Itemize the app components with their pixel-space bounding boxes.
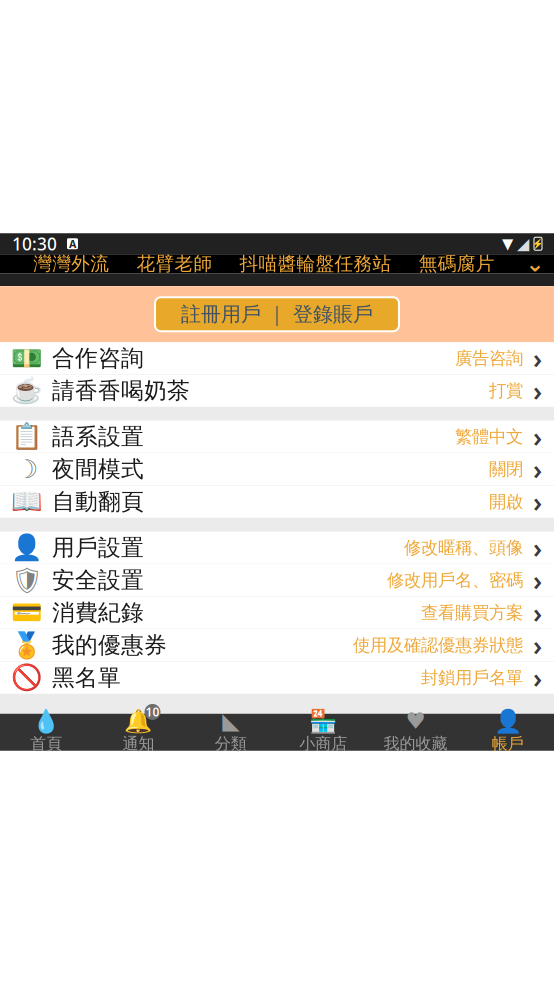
- button[interactable]: 🏪: [277, 706, 369, 759]
- staticText: 📖: [11, 487, 43, 516]
- staticText: ◢: [517, 235, 529, 253]
- button[interactable]: 💵: [0, 342, 554, 374]
- button[interactable]: 🚫: [0, 662, 554, 694]
- staticText: 自動翻頁: [52, 488, 144, 516]
- staticText: ›: [533, 451, 542, 487]
- staticText: 👤: [494, 708, 522, 734]
- staticText: 💳: [11, 598, 43, 627]
- staticText: ›: [533, 419, 542, 454]
- staticText: 請香香喝奶茶: [52, 377, 190, 405]
- button[interactable]: 📋: [0, 421, 554, 453]
- staticText: 消費紀錄: [52, 599, 144, 627]
- button[interactable]: 👤: [462, 706, 554, 759]
- staticText: ›: [533, 484, 542, 519]
- staticText: 關閉: [489, 459, 523, 480]
- button[interactable]: ♥: [369, 706, 462, 759]
- staticText: 🚫: [11, 663, 43, 692]
- staticText: 查看購買方案: [421, 602, 523, 623]
- staticText: 封鎖用戶名單: [421, 667, 523, 688]
- button[interactable]: 灣灣外流: [33, 252, 109, 275]
- staticText: 🏪: [309, 708, 337, 734]
- staticText: 註冊用戶 ｜ 登錄賬戶: [181, 302, 373, 327]
- staticText: 安全設置: [52, 566, 144, 594]
- staticText: 👤: [11, 533, 43, 562]
- button[interactable]: 註冊用戶 ｜ 登錄賬戶: [155, 297, 399, 331]
- staticText: ›: [533, 660, 542, 695]
- staticText: 10: [145, 704, 159, 720]
- staticText: 抖喵醬輪盤任務站: [240, 252, 392, 275]
- staticText: ☕: [11, 376, 43, 405]
- staticText: 我的優惠券: [52, 631, 167, 659]
- staticText: ›: [533, 627, 542, 663]
- staticText: 繁體中文: [455, 426, 523, 447]
- staticText: 帳戶: [492, 734, 524, 754]
- staticText: 💧: [32, 708, 60, 734]
- staticText: 🛡: [11, 566, 43, 595]
- staticText: ⚡: [532, 238, 544, 249]
- staticText: 通知: [122, 734, 154, 754]
- staticText: ◣: [222, 708, 239, 734]
- staticText: 🏅: [11, 631, 43, 660]
- staticText: ›: [533, 562, 542, 598]
- button[interactable]: 💧: [0, 706, 92, 759]
- button[interactable]: 無碼腐片: [419, 252, 495, 275]
- button[interactable]: 🏅: [0, 629, 554, 661]
- staticText: ›: [533, 595, 542, 630]
- staticText: 分類: [215, 734, 247, 754]
- button[interactable]: ☽: [0, 453, 554, 485]
- staticText: 首頁: [30, 734, 62, 754]
- staticText: A: [69, 237, 76, 251]
- staticText: ☽: [15, 455, 38, 484]
- staticText: ▼: [502, 235, 513, 252]
- staticText: 使用及確認優惠券狀態: [353, 635, 523, 656]
- staticText: 開啟: [489, 491, 523, 512]
- staticText: 小商店: [299, 734, 347, 754]
- staticText: 花臂老師: [136, 252, 212, 275]
- staticText: ›: [533, 530, 542, 565]
- staticText: 無碼腐片: [419, 252, 495, 275]
- staticText: 灣灣外流: [33, 252, 109, 275]
- staticText: 打賞: [489, 380, 523, 401]
- button[interactable]: 💳: [0, 597, 554, 629]
- staticText: 💵: [11, 344, 43, 373]
- staticText: ›: [533, 373, 542, 408]
- staticText: ›: [533, 340, 542, 376]
- button[interactable]: 抖喵醬輪盤任務站: [240, 252, 392, 275]
- staticText: 用戶設置: [52, 534, 144, 562]
- staticText: 📋: [11, 422, 43, 451]
- staticText: 修改用戶名、密碼: [387, 570, 523, 591]
- staticText: 修改暱稱、頭像: [404, 537, 523, 558]
- staticText: ⌄: [525, 251, 544, 277]
- button[interactable]: 📖: [0, 486, 554, 518]
- staticText: 廣告咨詢: [455, 348, 523, 369]
- staticText: ♥: [405, 708, 425, 734]
- button[interactable]: 花臂老師: [136, 252, 212, 275]
- staticText: 黑名單: [52, 664, 121, 692]
- staticText: 夜間模式: [52, 455, 144, 483]
- button[interactable]: Expand menu: [522, 255, 548, 273]
- button[interactable]: 🛡: [0, 564, 554, 596]
- staticText: 合作咨詢: [52, 344, 144, 372]
- button[interactable]: ☕: [0, 375, 554, 407]
- staticText: 我的收藏: [383, 734, 447, 754]
- button[interactable]: 🔔: [92, 706, 185, 759]
- staticText: 語系設置: [52, 423, 144, 451]
- button[interactable]: ◣: [185, 706, 277, 759]
- button[interactable]: 👤: [0, 532, 554, 564]
- staticText: 🔔: [124, 708, 152, 734]
- staticText: 10:30: [12, 232, 57, 255]
